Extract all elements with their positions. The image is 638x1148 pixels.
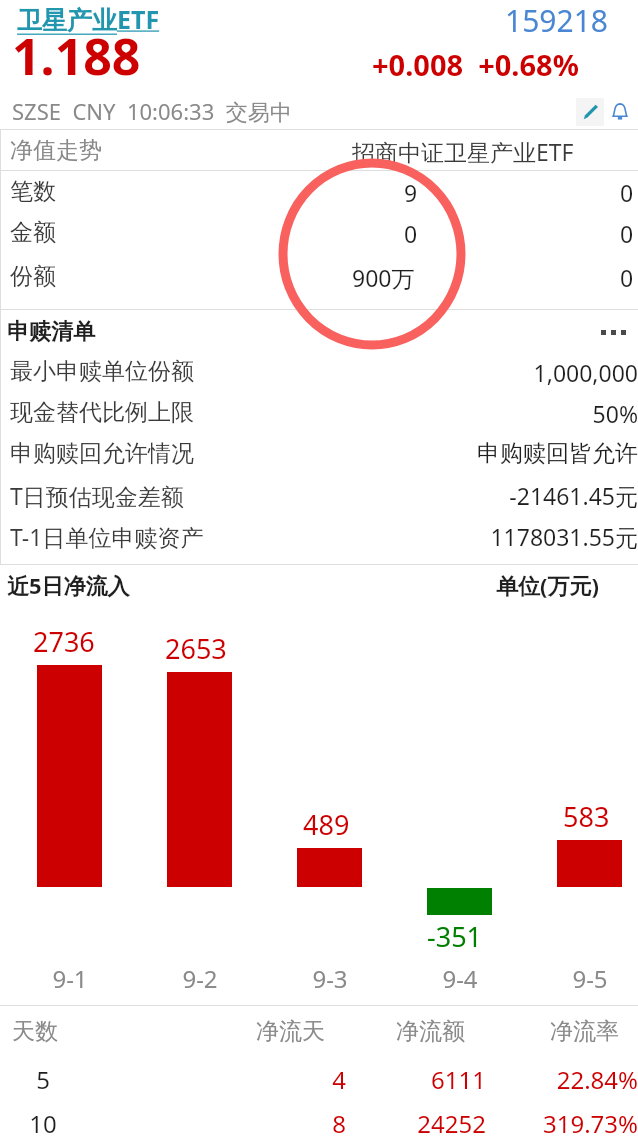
button[interactable]: Price alert — [606, 98, 634, 126]
staticText: 0 — [404, 218, 418, 249]
staticText: 50% — [300, 398, 638, 429]
staticText: T-1日单位申赎资产 — [10, 521, 204, 552]
staticText: 10 — [0, 1107, 86, 1140]
staticText: 4 — [240, 1063, 346, 1096]
staticText: 6111 — [370, 1063, 486, 1096]
staticText: 2653 — [165, 630, 227, 667]
staticText: 最小申赎单位份额 — [10, 357, 194, 386]
staticText: 0 — [620, 262, 634, 293]
staticText: 9-1 — [32, 962, 108, 995]
staticText: 319.73% — [490, 1107, 638, 1140]
staticText: 净流率 — [550, 1017, 619, 1046]
staticText: 24252 — [370, 1107, 486, 1140]
staticText: +0.008 +0.68% — [372, 45, 579, 84]
staticText: 申购赎回皆允许 — [300, 439, 638, 468]
staticText: 900万 — [352, 262, 415, 293]
button[interactable]: 卫星产业ETF — [17, 2, 160, 36]
staticText: 9-3 — [292, 962, 368, 995]
staticText: 8 — [240, 1107, 346, 1140]
staticText: 份额 — [10, 262, 56, 291]
staticText: 9 — [404, 177, 418, 208]
staticText: T日预估现金差额 — [10, 480, 184, 511]
staticText: -21461.45元 — [300, 480, 638, 511]
staticText: 金额 — [10, 218, 56, 247]
staticText: 2736 — [33, 623, 95, 660]
staticText: -351 — [427, 918, 483, 955]
staticText: 申赎清单 — [7, 318, 95, 346]
staticText: 净流天 — [256, 1017, 325, 1046]
staticText: 单位(万元) — [496, 570, 599, 600]
staticText: 0 — [620, 218, 634, 249]
button[interactable]: 159218 — [505, 0, 608, 41]
staticText: 现金替代比例上限 — [10, 398, 194, 427]
staticText: 笔数 — [10, 177, 56, 206]
button[interactable]: 申赎清单 — [0, 312, 638, 348]
staticText: 招商中证卫星产业ETF — [352, 136, 574, 167]
staticText: SZSE CNY 10:06:33 交易中 — [12, 96, 292, 126]
staticText: 5 — [0, 1063, 86, 1096]
button[interactable]: Edit — [576, 98, 604, 126]
staticText: 天数 — [12, 1017, 58, 1046]
staticText: 净值走势 — [10, 136, 102, 165]
staticText: 489 — [303, 806, 350, 843]
staticText: 1,000,000 — [300, 357, 638, 388]
staticText: 9-4 — [422, 962, 498, 995]
staticText: 1.188 — [12, 22, 141, 90]
staticText: 22.84% — [490, 1063, 638, 1096]
staticText: 1178031.55元 — [300, 521, 638, 552]
staticText: 9-5 — [552, 962, 628, 995]
staticText: 申购赎回允许情况 — [10, 439, 194, 468]
staticText: 近5日净流入 — [7, 570, 130, 600]
staticText: 0 — [620, 177, 634, 208]
staticText: 583 — [563, 798, 610, 835]
staticText: 9-2 — [162, 962, 238, 995]
staticText: 净流额 — [396, 1017, 465, 1046]
